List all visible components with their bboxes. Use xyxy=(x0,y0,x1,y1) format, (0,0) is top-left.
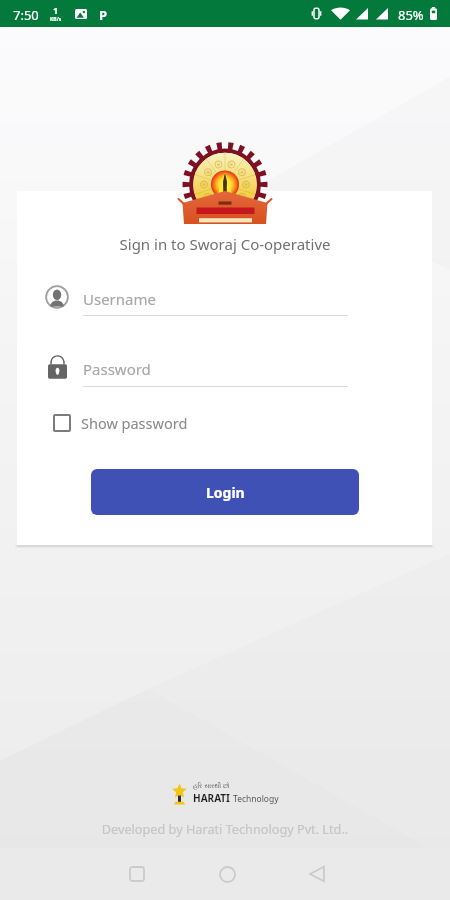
staticText: P xyxy=(99,6,108,24)
button[interactable]: Back xyxy=(296,848,338,900)
button[interactable]: Show password xyxy=(53,412,188,434)
button[interactable]: Recent apps xyxy=(116,848,158,900)
staticText: 7:50 xyxy=(13,6,39,24)
staticText: Sign in to Sworaj Co-operative xyxy=(0,234,450,254)
staticText: Username xyxy=(83,289,156,309)
staticText: Show password xyxy=(81,413,188,433)
staticText: HARATI xyxy=(193,791,231,805)
staticText: Technology xyxy=(233,793,279,805)
button[interactable]: Home xyxy=(206,848,248,900)
staticText: 85% xyxy=(398,6,424,24)
button[interactable]: Login xyxy=(91,469,359,515)
staticText: હરિ સારથી છો xyxy=(193,781,230,790)
staticText: Password xyxy=(83,359,151,379)
staticText: Developed by Harati Technology Pvt. Ltd.… xyxy=(0,820,450,837)
staticText: Login xyxy=(206,483,245,502)
staticText: KB/s xyxy=(50,16,62,23)
staticText: 1 xyxy=(53,4,59,16)
